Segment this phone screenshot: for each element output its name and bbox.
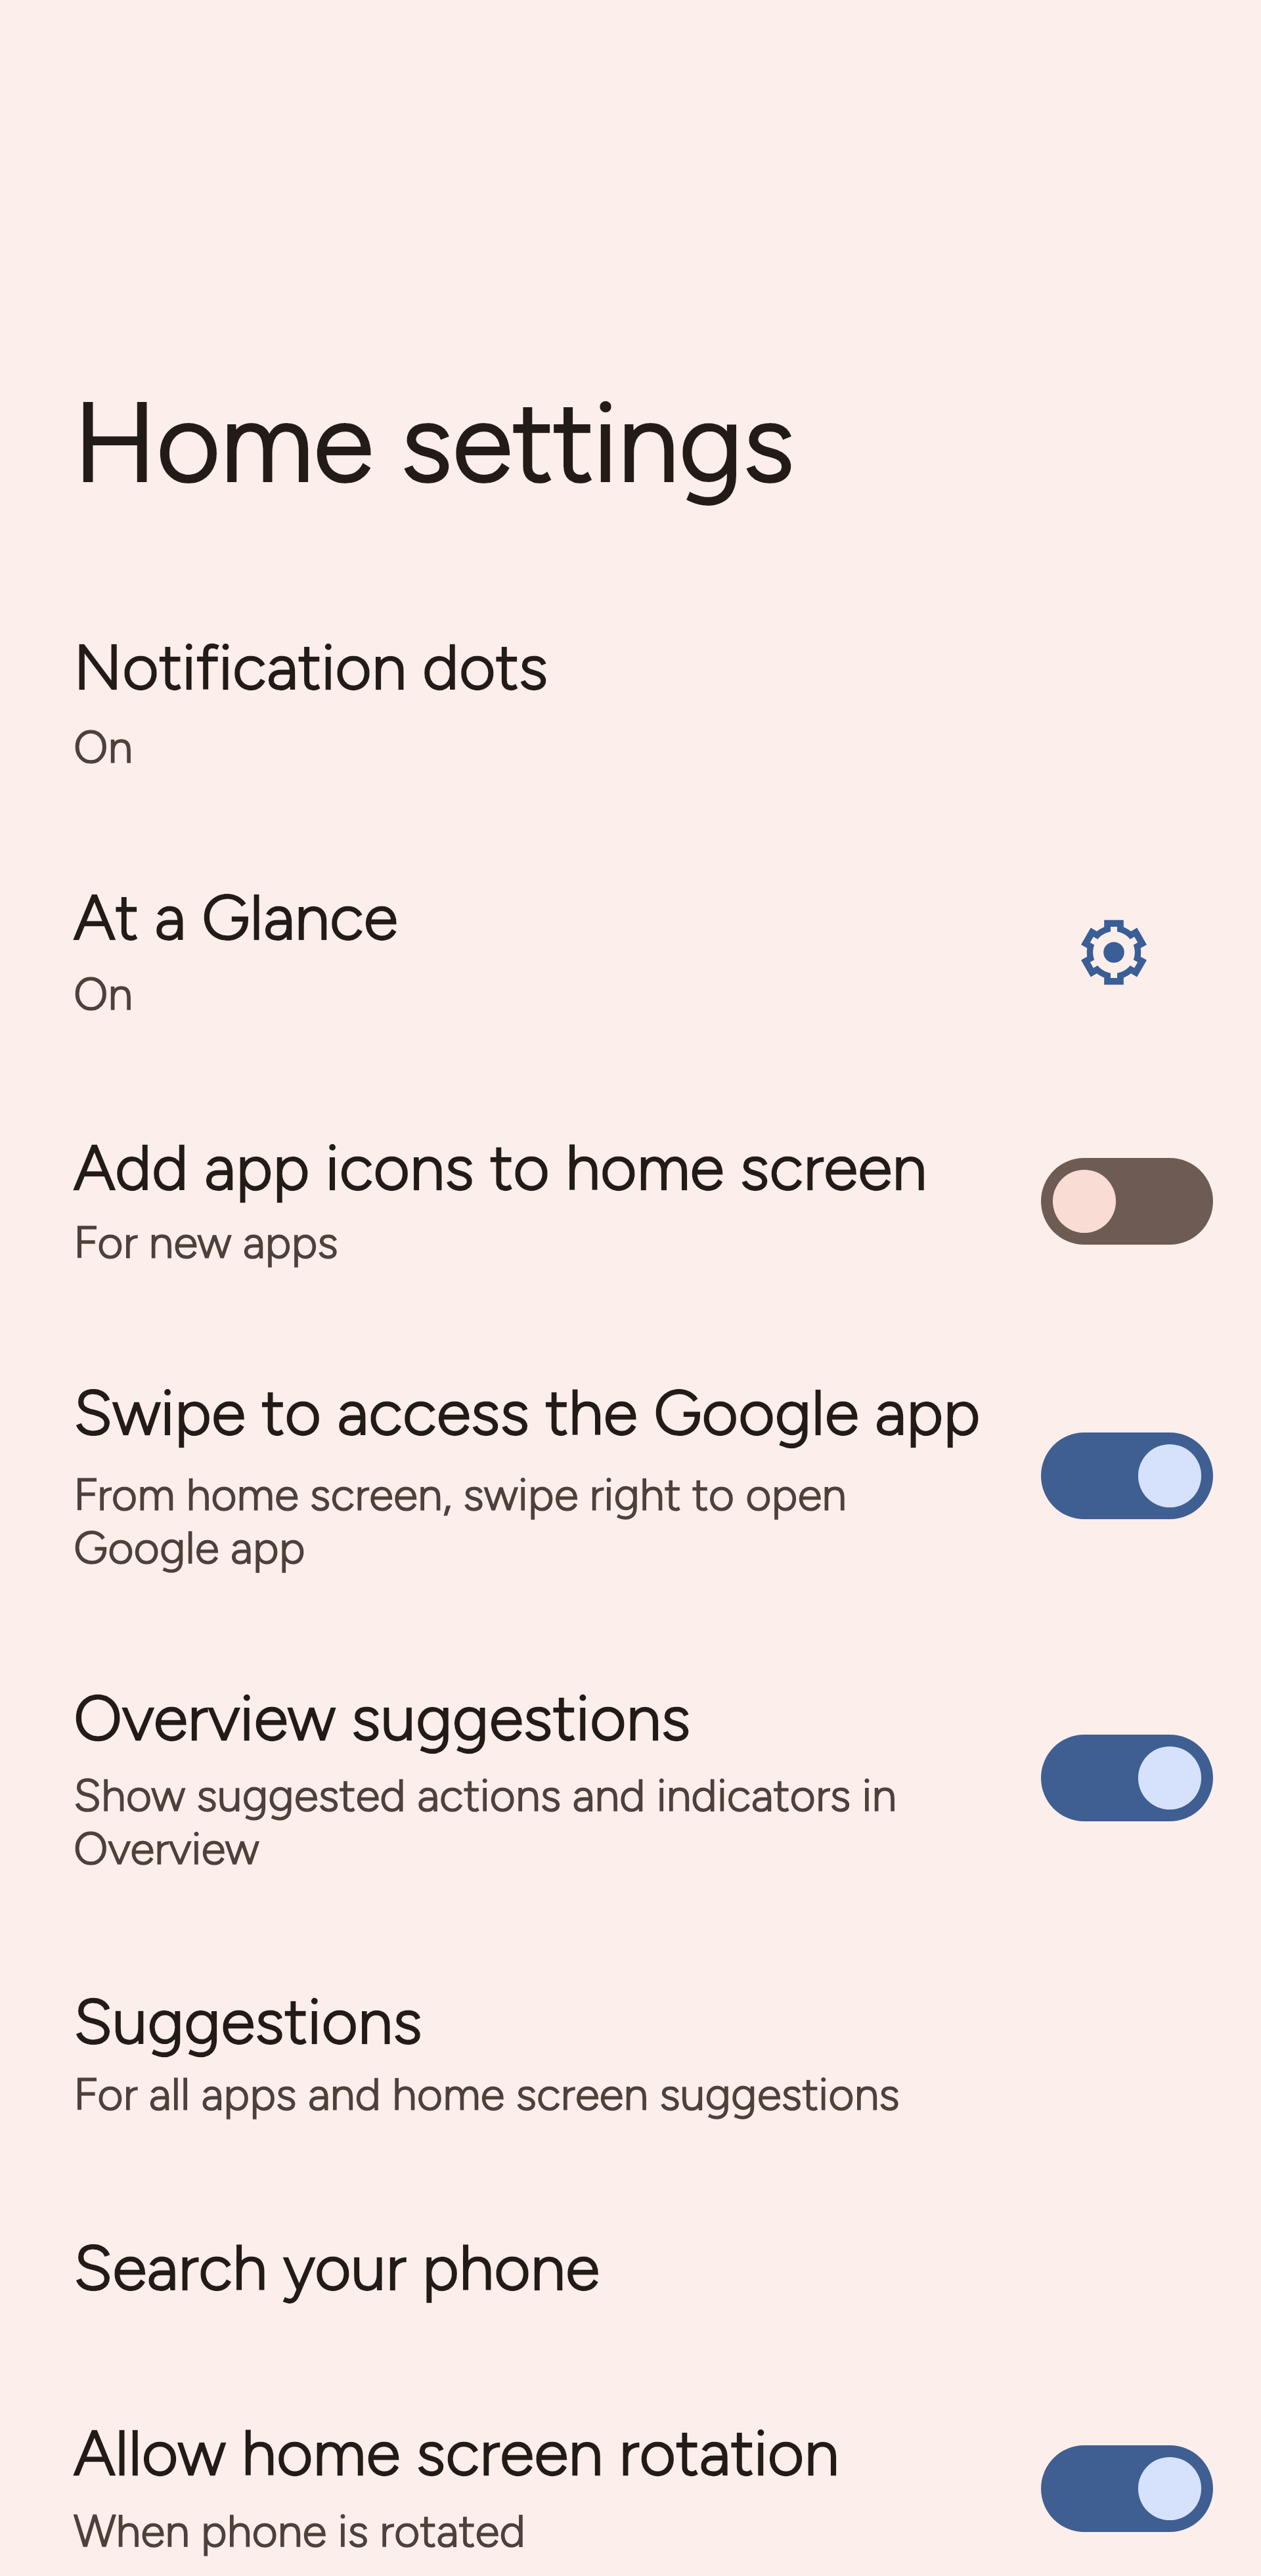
staticText: Notification dots	[74, 629, 548, 705]
staticText: When phone is rotated	[74, 2505, 525, 2558]
button[interactable]: Add app icons to home screen	[0, 1094, 1261, 1291]
staticText: Show suggested actions and indicators in…	[74, 1769, 897, 1875]
button[interactable]: Swipe to access the Google app, on	[1041, 1432, 1213, 1519]
button[interactable]: Swipe to access the Google app	[0, 1340, 1261, 1589]
staticText: Allow home screen rotation	[74, 2415, 839, 2491]
staticText: Suggestions	[74, 1984, 422, 2059]
staticText: For all apps and home screen suggestions	[74, 2068, 900, 2121]
button[interactable]: Add app icons to home screen, off	[1041, 1158, 1213, 1245]
staticText: Add app icons to home screen	[74, 1130, 927, 1205]
staticText: Allow home screen rotation	[74, 2415, 839, 2491]
button[interactable]: At a Glance	[0, 844, 1261, 1041]
staticText: When phone is rotated	[74, 2505, 525, 2558]
staticText: On	[74, 721, 133, 774]
button[interactable]: Notification dots	[0, 591, 1261, 788]
staticText: Search your phone	[74, 2230, 600, 2305]
staticText: Add app icons to home screen	[74, 1130, 927, 1205]
staticText: On	[74, 968, 133, 1021]
button[interactable]: At a Glance settings	[1071, 910, 1157, 995]
staticText: Overview suggestions	[74, 1680, 691, 1756]
button[interactable]: Overview suggestions	[0, 1645, 1261, 1895]
staticText: Swipe to access the Google app	[74, 1375, 981, 1450]
staticText: On	[74, 968, 133, 1021]
staticText: For all apps and home screen suggestions	[74, 2068, 900, 2121]
staticText: At a Glance	[74, 879, 398, 955]
button[interactable]: Overview suggestions, on	[1041, 1735, 1213, 1821]
staticText: For new apps	[74, 1216, 339, 1269]
staticText: Swipe to access the Google app	[74, 1375, 981, 1450]
staticText: For new apps	[74, 1216, 339, 1269]
staticText: At a Glance	[74, 879, 398, 955]
staticText: Suggestions	[74, 1984, 422, 2059]
staticText: Home settings	[74, 372, 795, 510]
button[interactable]: Allow home screen rotation	[0, 2381, 1261, 2576]
staticText: Notification dots	[74, 629, 548, 705]
staticText: From home screen, swipe right to open Go…	[74, 1468, 847, 1574]
staticText: Overview suggestions	[74, 1680, 691, 1756]
button[interactable]: Search your phone	[0, 2197, 1261, 2348]
staticText: Search your phone	[74, 2230, 600, 2305]
staticText: From home screen, swipe right to open Go…	[74, 1468, 847, 1574]
staticText: Show suggested actions and indicators in…	[74, 1769, 897, 1875]
staticText: Home settings	[74, 372, 795, 510]
staticText: On	[74, 721, 133, 774]
button[interactable]: Allow home screen rotation, on	[1041, 2445, 1213, 2532]
button[interactable]: Suggestions	[0, 1947, 1261, 2144]
